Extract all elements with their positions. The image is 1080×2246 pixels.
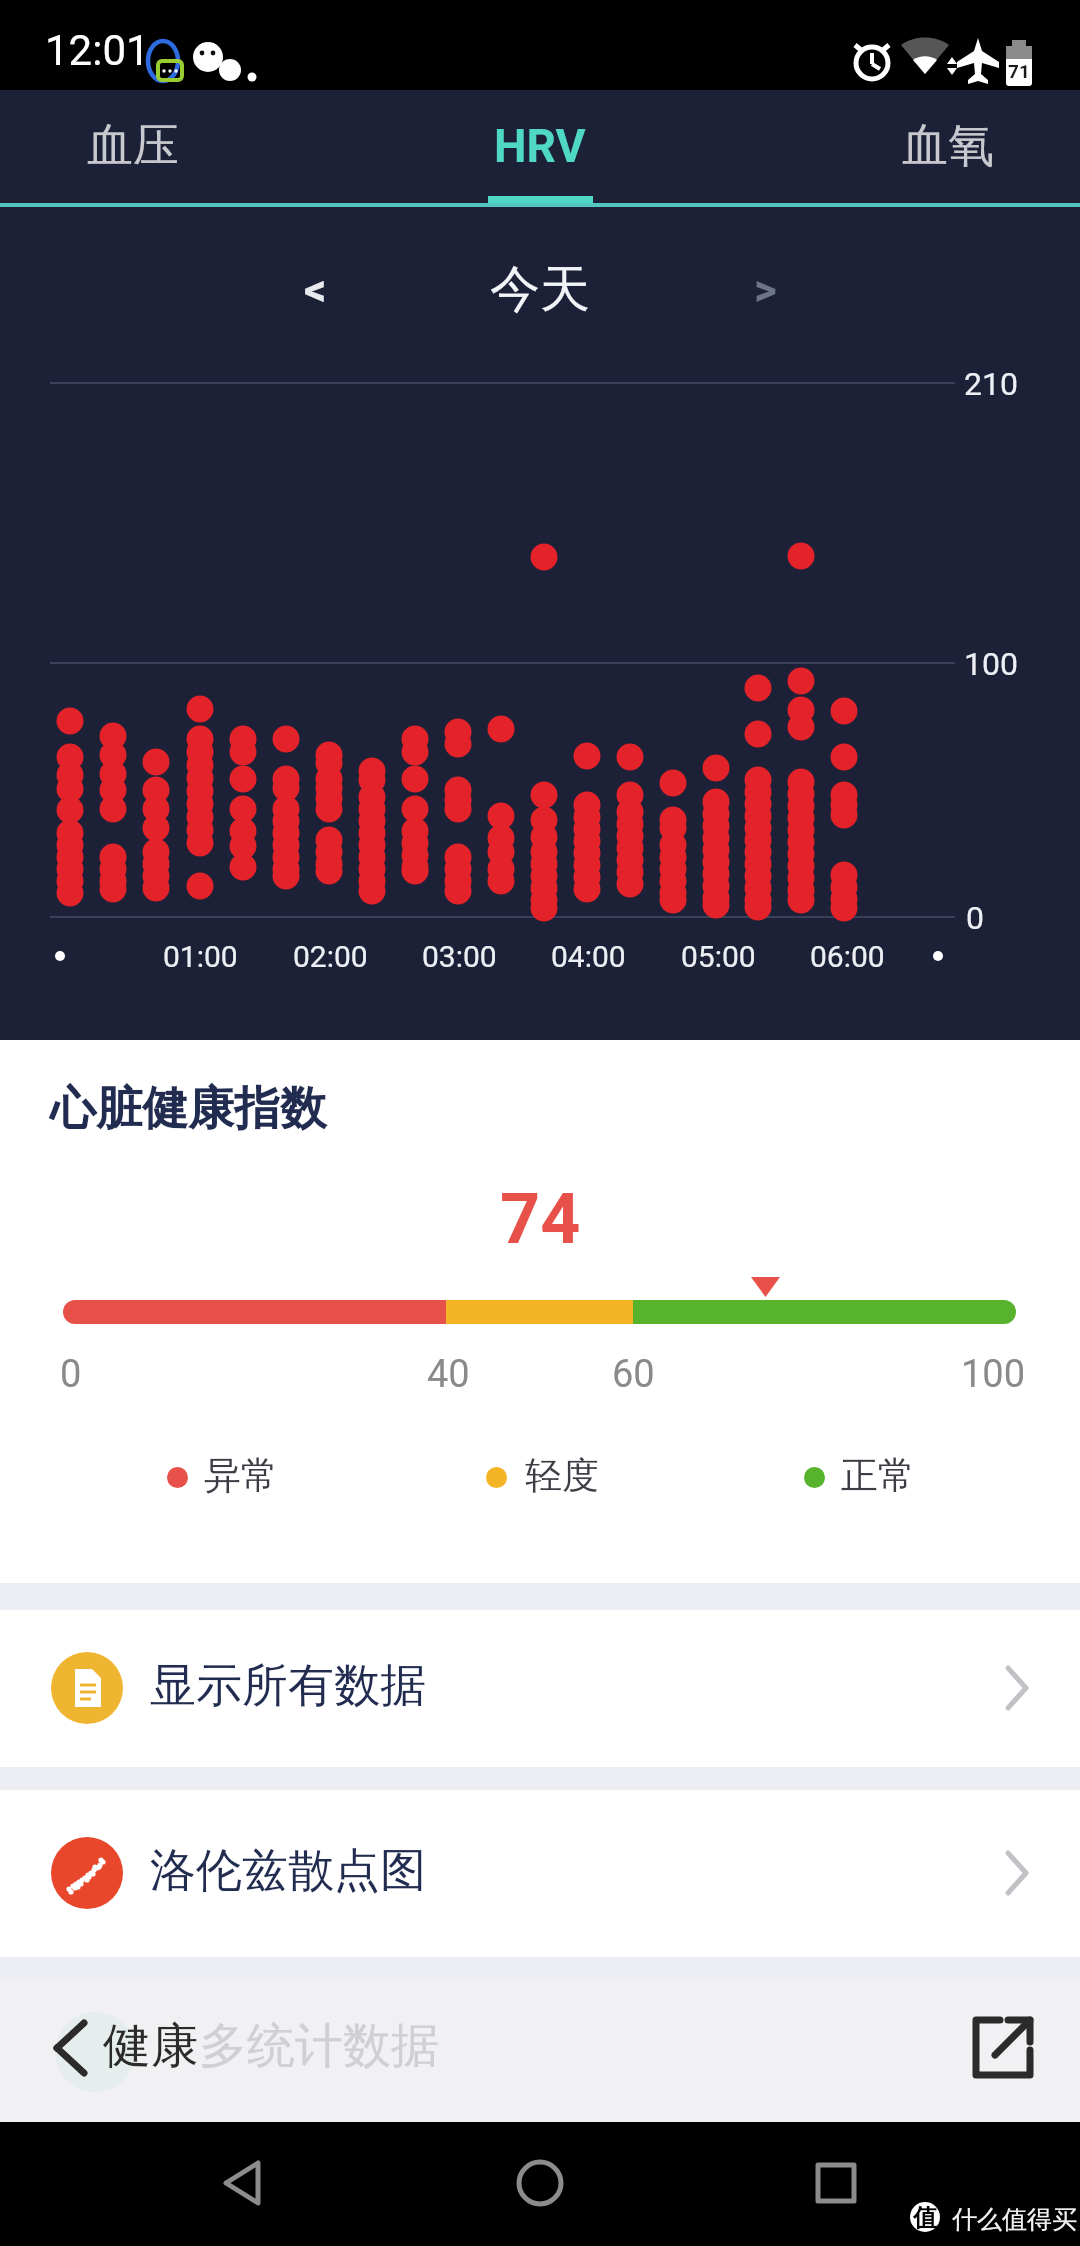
staticText: 71 [1008, 60, 1030, 82]
staticText: HRV [494, 119, 586, 173]
staticText: 轻度 [525, 1452, 599, 1499]
staticText: 01:00 [163, 939, 238, 974]
button[interactable]: 血氧 [860, 90, 1035, 202]
staticText: 异常 [204, 1452, 278, 1499]
button[interactable]: > [720, 245, 810, 335]
staticText: 多统计数据 [199, 2016, 439, 2076]
staticText: 100 [961, 1352, 1026, 1397]
staticText: 04:00 [551, 939, 626, 974]
button[interactable] [465, 2122, 615, 2246]
staticText: 210 [964, 365, 1018, 403]
staticText: > [754, 264, 777, 316]
button[interactable]: 洛伦兹散点图 [0, 1790, 1080, 1957]
staticText: 02:00 [293, 939, 368, 974]
staticText: < [304, 264, 327, 316]
staticText: 什么值得买 [952, 2204, 1077, 2235]
staticText: 0 [60, 1352, 82, 1397]
button[interactable] [760, 2122, 910, 2246]
staticText: 血压 [87, 117, 179, 175]
staticText: 60 [612, 1352, 655, 1397]
button[interactable] [180, 2122, 330, 2246]
staticText: 今天 [490, 258, 590, 321]
staticText: 血氧 [902, 117, 994, 175]
button[interactable]: HRV [452, 90, 628, 202]
staticText: 心脏健康指数 [50, 1080, 326, 1138]
staticText: 0 [966, 899, 984, 937]
staticText: 健康 [103, 2016, 199, 2076]
staticText: 值 [913, 2203, 937, 2233]
staticText: 74 [500, 1178, 581, 1260]
staticText: 洛伦兹散点图 [150, 1842, 426, 1900]
staticText: 03:00 [422, 939, 497, 974]
button[interactable]: 显示所有数据 [0, 1610, 1080, 1767]
staticText: 40 [427, 1352, 470, 1397]
button[interactable]: < [270, 245, 360, 335]
button[interactable]: 血压 [45, 90, 220, 202]
staticText: 06:00 [810, 939, 885, 974]
staticText: 05:00 [681, 939, 756, 974]
staticText: 正常 [841, 1452, 915, 1499]
staticText: 12:01 [45, 26, 150, 75]
button[interactable]: 健康 [0, 1980, 1080, 2122]
staticText: 显示所有数据 [150, 1657, 426, 1715]
staticText: 100 [964, 645, 1018, 683]
